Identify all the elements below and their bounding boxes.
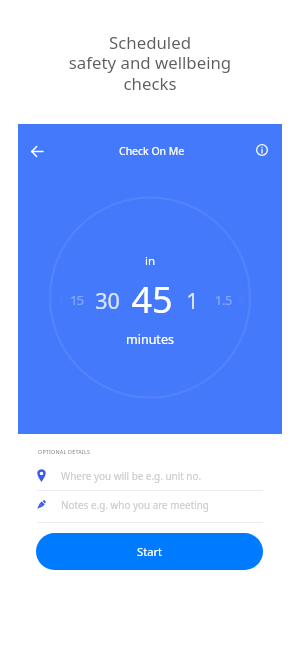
staticText: Scheduled safety and wellbeing checks: [0, 31, 300, 95]
staticText: 1.5: [215, 292, 232, 309]
staticText: Where you will be e.g. unit no.: [61, 469, 202, 482]
button[interactable]: 45: [112, 273, 192, 325]
staticText: 15: [70, 291, 83, 309]
button[interactable]: Start: [36, 533, 263, 570]
button[interactable]: 15: [36, 274, 116, 326]
button[interactable]: Check On Me: [92, 132, 212, 170]
staticText: Start: [137, 544, 163, 559]
button[interactable]: 30: [67, 274, 147, 326]
button[interactable]: Back: [18, 132, 56, 170]
staticText: Check On Me: [119, 144, 185, 158]
staticText: OPTIONAL DETAILS: [38, 448, 91, 455]
button[interactable]: Information: [243, 131, 281, 169]
staticText: 1: [186, 286, 199, 315]
button[interactable]: 1: [152, 274, 232, 326]
button[interactable]: 1.5: [183, 274, 263, 326]
staticText: 30: [95, 286, 120, 315]
button[interactable]: Where you will be e.g. unit no.: [0, 461, 300, 490]
button[interactable]: 1: [21, 274, 101, 326]
staticText: 45: [131, 275, 173, 324]
staticText: minutes: [126, 331, 174, 348]
button[interactable]: 2: [201, 274, 281, 326]
staticText: Notes e.g. who you are meeting: [61, 498, 209, 511]
button[interactable]: Notes e.g. who you are meeting: [0, 490, 300, 519]
staticText: in: [145, 253, 156, 269]
